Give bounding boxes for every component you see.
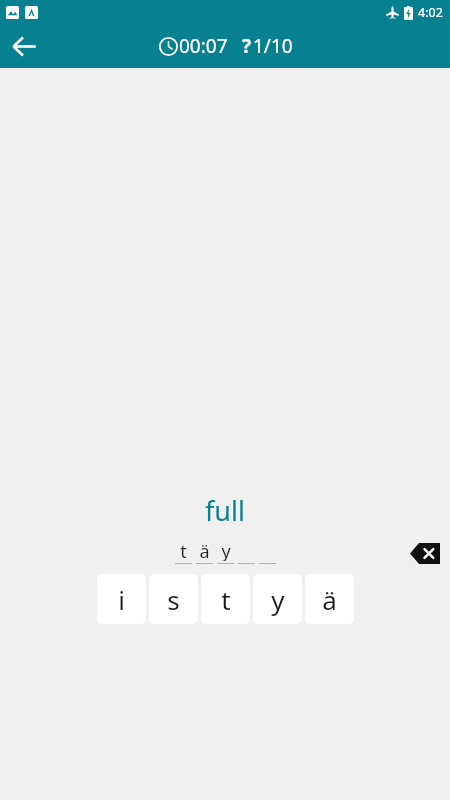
staticText: s bbox=[167, 582, 180, 617]
staticText: y bbox=[221, 539, 231, 561]
staticText: i bbox=[118, 582, 125, 617]
staticText: 1/10 bbox=[253, 33, 293, 59]
staticText: 4:02 bbox=[418, 4, 443, 21]
staticText: t bbox=[221, 582, 231, 617]
staticText: ? bbox=[242, 33, 252, 59]
button[interactable]: y bbox=[253, 574, 302, 624]
staticText: ä bbox=[322, 582, 337, 617]
staticText: y bbox=[271, 582, 285, 617]
button[interactable]: ä bbox=[305, 574, 354, 624]
button[interactable]: Back bbox=[4, 26, 44, 66]
staticText: ä bbox=[199, 539, 210, 561]
button[interactable]: t bbox=[201, 574, 250, 624]
button[interactable]: Backspace bbox=[407, 540, 443, 566]
button[interactable]: s bbox=[149, 574, 198, 624]
staticText: t bbox=[180, 539, 187, 561]
staticText: 00:07 bbox=[179, 33, 228, 59]
staticText: full bbox=[205, 492, 245, 529]
button[interactable]: i bbox=[97, 574, 146, 624]
